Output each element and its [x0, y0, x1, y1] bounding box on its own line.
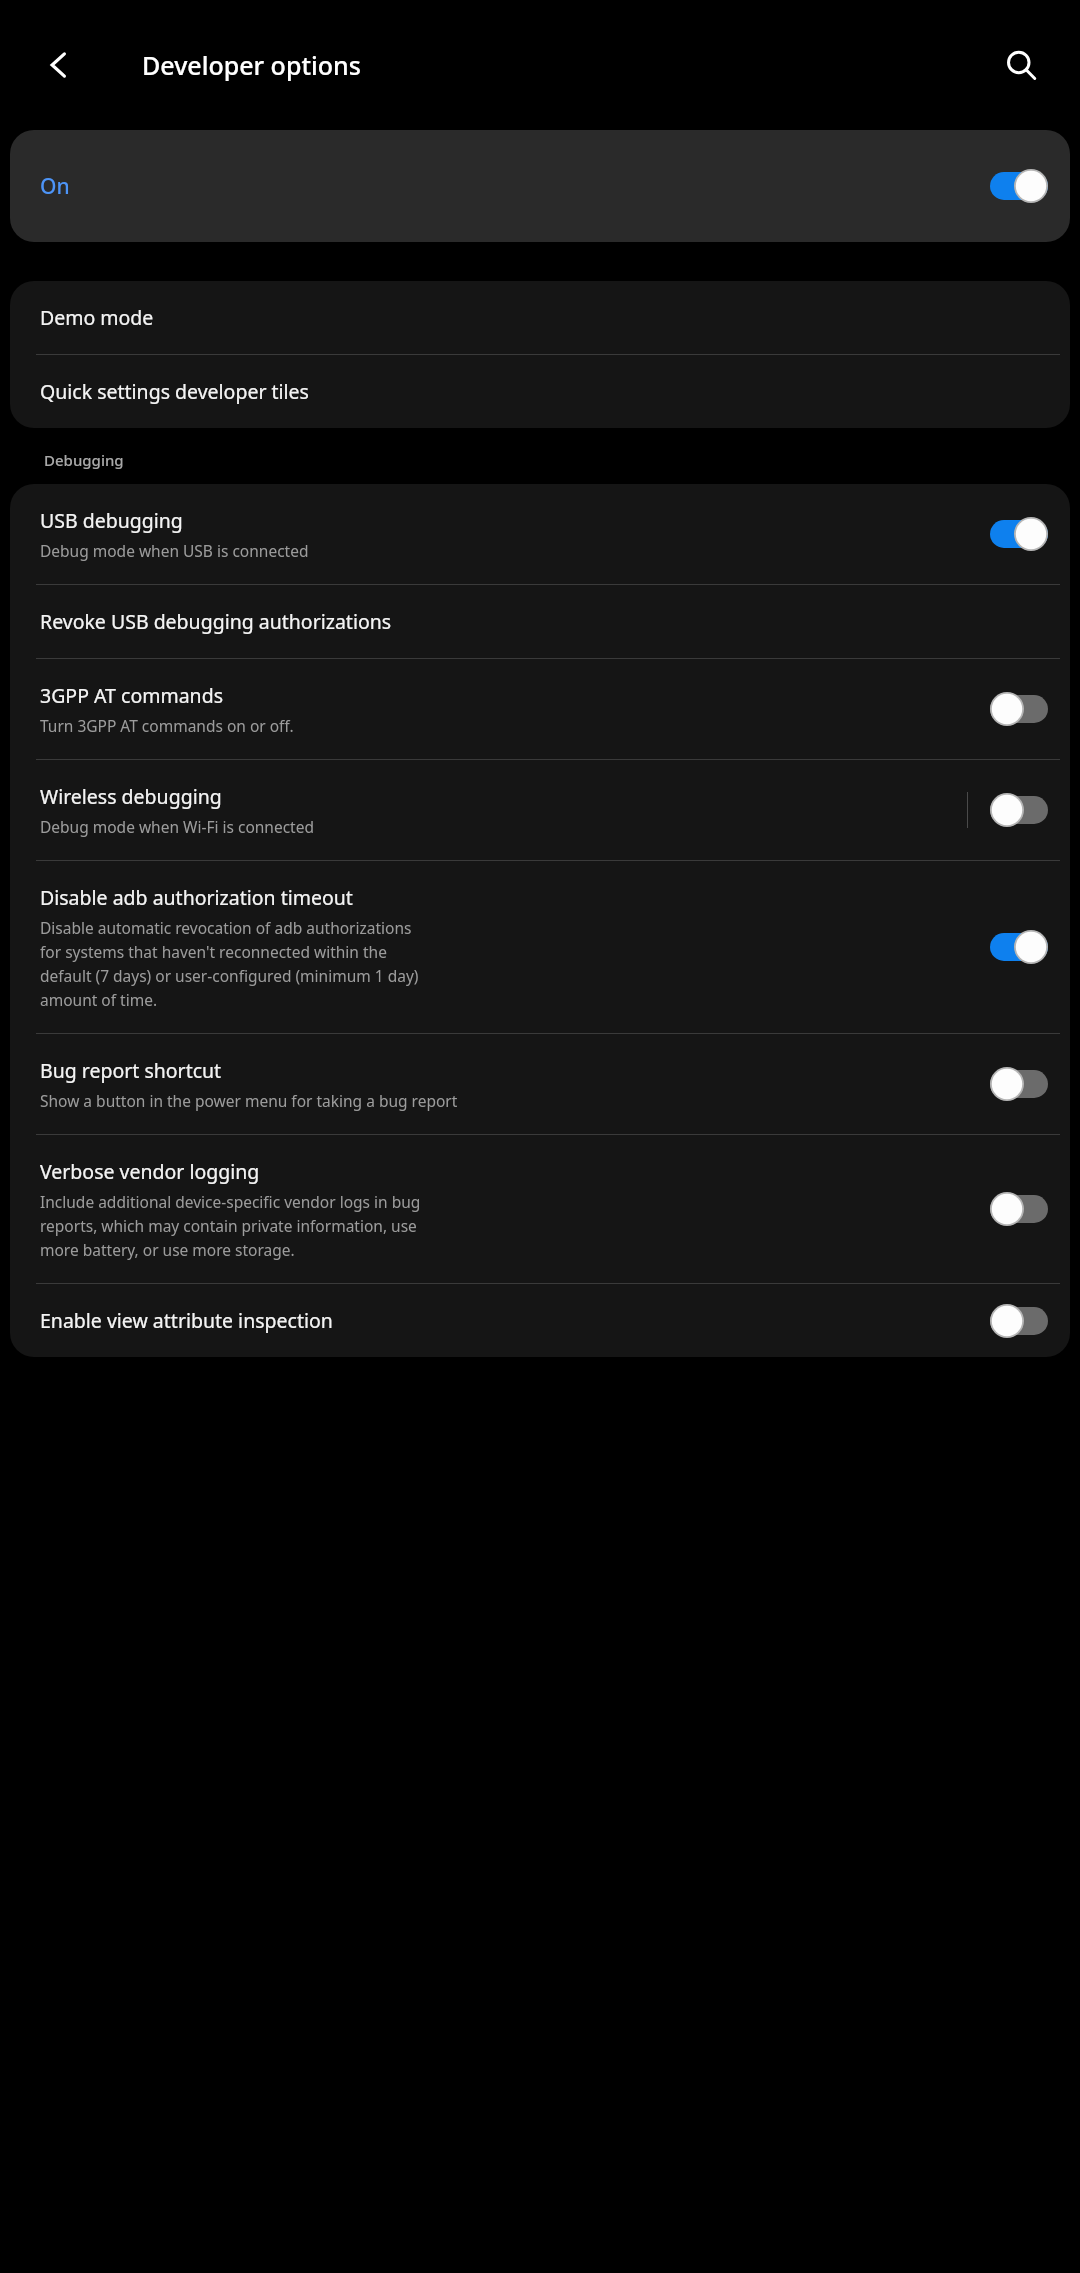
- staticText: Disable automatic revocation of adb auth…: [40, 917, 430, 1010]
- staticText: Revoke USB debugging authorizations: [40, 608, 392, 635]
- staticText: Bug report shortcut: [40, 1057, 222, 1084]
- button[interactable]: Verbose vendor logging: [10, 1135, 1070, 1283]
- staticText: USB debugging: [40, 507, 183, 534]
- staticText: Debugging: [44, 450, 124, 470]
- staticText: Include additional device-specific vendo…: [40, 1191, 430, 1260]
- button[interactable]: Enable view attribute inspection: [10, 1284, 1070, 1357]
- button[interactable]: Bug report shortcut: [10, 1034, 1070, 1134]
- staticText: Demo mode: [40, 304, 154, 331]
- staticText: Debug mode when USB is connected: [40, 540, 309, 561]
- button[interactable]: Demo mode: [10, 281, 1070, 354]
- button[interactable]: Back: [30, 36, 88, 94]
- staticText: Show a button in the power menu for taki…: [40, 1090, 458, 1111]
- staticText: Quick settings developer tiles: [40, 378, 309, 405]
- staticText: Developer options: [142, 48, 361, 82]
- staticText: 3GPP AT commands: [40, 682, 223, 709]
- button[interactable]: 3GPP AT commands: [10, 659, 1070, 759]
- staticText: Wireless debugging: [40, 783, 222, 810]
- staticText: Debug mode when Wi-Fi is connected: [40, 816, 314, 837]
- staticText: Disable adb authorization timeout: [40, 884, 353, 911]
- staticText: On: [40, 172, 70, 201]
- button[interactable]: On: [10, 130, 1070, 242]
- staticText: Verbose vendor logging: [40, 1158, 260, 1185]
- button[interactable]: Search: [990, 34, 1052, 96]
- staticText: Turn 3GPP AT commands on or off.: [40, 715, 294, 736]
- button[interactable]: Disable adb authorization timeout: [10, 861, 1070, 1033]
- button[interactable]: Revoke USB debugging authorizations: [10, 585, 1070, 658]
- button[interactable]: Wireless debugging: [10, 760, 1070, 860]
- staticText: Enable view attribute inspection: [40, 1307, 333, 1334]
- button[interactable]: Quick settings developer tiles: [10, 355, 1070, 428]
- button[interactable]: USB debugging: [10, 484, 1070, 584]
